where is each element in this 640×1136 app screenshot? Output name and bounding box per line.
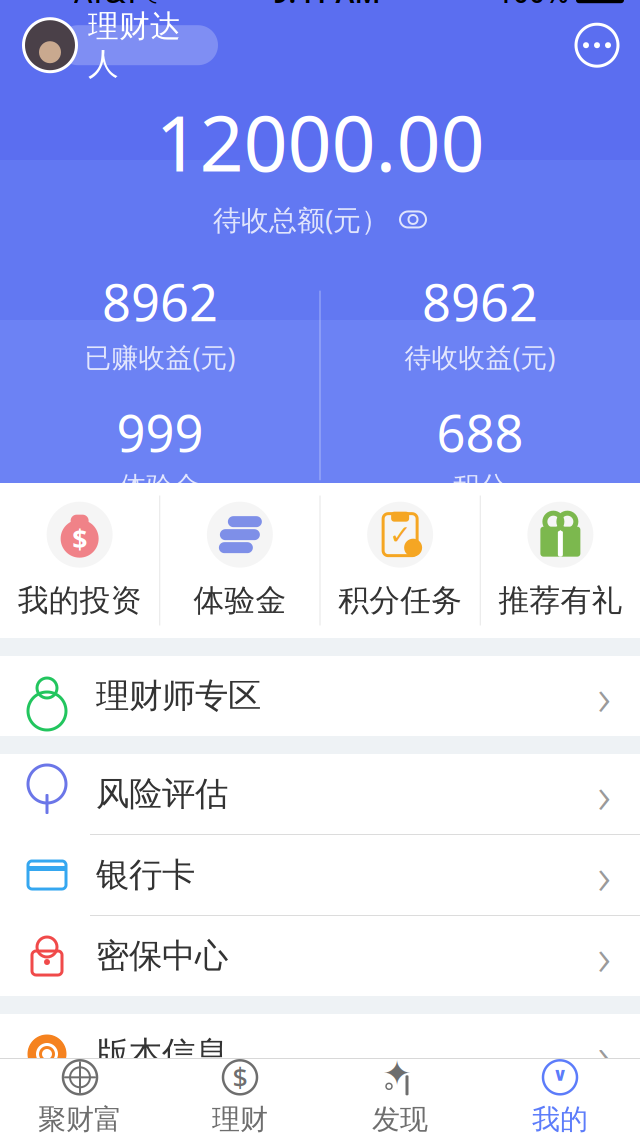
button[interactable]: 理财师专区: [0, 656, 640, 736]
staticText: ✓: [389, 519, 411, 550]
staticText: 风险评估: [96, 773, 228, 814]
staticText: AT&T: [74, 0, 140, 11]
staticText: ›: [597, 1020, 610, 1088]
staticText: 理财师专区: [96, 675, 261, 716]
staticText: 我的投资: [18, 582, 142, 619]
staticText: ∨: [552, 1064, 567, 1085]
staticText: 理财: [212, 1102, 268, 1136]
button[interactable]: $: [160, 1058, 320, 1136]
staticText: 688: [436, 399, 523, 466]
button[interactable]: 风险评估: [0, 754, 640, 835]
staticText: 12000.00: [155, 90, 484, 193]
staticText: 999: [116, 399, 203, 466]
staticText: ›: [597, 922, 610, 990]
staticText: ✦: [382, 1054, 411, 1093]
button[interactable]: 体验金: [160, 483, 319, 638]
button[interactable]: $: [0, 483, 159, 638]
staticText: ◟: [147, 0, 156, 6]
button[interactable]: ∨: [480, 1058, 640, 1136]
button[interactable]: 密保中心: [0, 916, 640, 996]
button[interactable]: 银行卡: [0, 835, 640, 916]
button[interactable]: 理财达人: [20, 16, 220, 74]
button[interactable]: 消息: [574, 22, 620, 68]
staticText: 100%: [497, 0, 569, 11]
staticText: 理财达人: [88, 7, 181, 83]
staticText: 已赚收益(元): [84, 339, 235, 375]
staticText: 银行卡: [96, 854, 195, 895]
staticText: 聚财富: [38, 1102, 122, 1136]
button[interactable]: 推荐有礼: [481, 483, 640, 638]
staticText: 积分任务: [338, 582, 462, 619]
staticText: 版本信息: [96, 1033, 228, 1074]
staticText: 积分: [453, 470, 507, 503]
staticText: $: [72, 521, 87, 557]
staticText: 8962: [102, 268, 218, 335]
staticText: ›: [597, 760, 610, 828]
staticText: $: [232, 1060, 247, 1095]
staticText: 密保中心: [96, 935, 228, 976]
staticText: 体验金: [193, 582, 286, 619]
staticText: 我的: [532, 1102, 588, 1136]
staticText: 8962: [422, 268, 538, 335]
button[interactable]: 聚财富: [0, 1058, 160, 1136]
staticText: ›: [597, 662, 610, 730]
staticText: 9:41 AM: [272, 0, 380, 11]
button[interactable]: ✦: [320, 1058, 480, 1136]
staticText: 待收总额(元）: [213, 201, 389, 238]
staticText: 推荐有礼: [498, 582, 622, 619]
staticText: 发现: [372, 1102, 428, 1136]
staticText: 待收收益(元): [404, 339, 555, 375]
button[interactable]: ✓: [320, 483, 480, 638]
staticText: 体验金: [119, 470, 200, 503]
staticText: ›: [597, 841, 610, 909]
button[interactable]: 版本信息: [0, 1014, 640, 1094]
